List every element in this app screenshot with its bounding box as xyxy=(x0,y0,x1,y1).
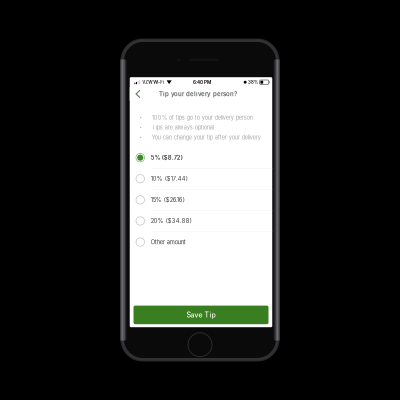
staticText: 5% ($8.72) xyxy=(151,154,183,161)
button[interactable]: Back xyxy=(130,87,146,101)
button[interactable]: 5% ($8.72) xyxy=(130,147,272,168)
button[interactable]: 20% ($34.88) xyxy=(130,211,272,231)
staticText: VZW Wi-Fi xyxy=(142,79,164,85)
staticText: Save Tip xyxy=(186,311,215,319)
staticText: 20% ($34.88) xyxy=(151,217,192,224)
button[interactable]: Save Tip xyxy=(133,306,268,324)
staticText: Other amount xyxy=(151,239,186,245)
button[interactable]: 15% ($26.16) xyxy=(130,189,272,210)
button[interactable]: 10% ($17.44) xyxy=(130,168,272,189)
staticText: 10% ($17.44) xyxy=(151,175,188,182)
staticText: 100% of tips go to your delivery person xyxy=(152,114,253,121)
staticText: 6:40 PM xyxy=(193,79,211,85)
staticText: 38% xyxy=(248,79,258,85)
staticText: Tip your delivery person? xyxy=(159,90,237,98)
staticText: 15% ($26.16) xyxy=(151,196,185,203)
staticText: Tips are always optional xyxy=(152,124,214,131)
button[interactable]: Other amount xyxy=(130,232,272,252)
staticText: You can change your tip after your deliv… xyxy=(152,134,261,141)
